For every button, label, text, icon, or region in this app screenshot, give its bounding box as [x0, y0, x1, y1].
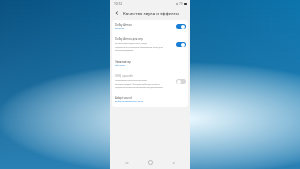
staticText: Качество звука и эффекты	[123, 10, 179, 16]
staticText: Эквалайзер	[115, 60, 131, 64]
button[interactable]: Dolby Atmos для игр	[112, 33, 188, 55]
staticText: Включен	[115, 27, 125, 30]
staticText: Dolby Atmos	[115, 23, 132, 27]
staticText: Adapt sound	[115, 96, 132, 100]
button[interactable]: Turn on	[176, 79, 186, 84]
button[interactable]: Dolby Atmos	[112, 20, 188, 33]
button[interactable]: UHQ upscaler	[112, 71, 188, 91]
button[interactable]: Adapt sound	[112, 91, 188, 107]
staticText: 79	[179, 2, 183, 6]
staticText: UHQ upscaler	[115, 74, 134, 78]
staticText: Выбор оптимального звука	[115, 100, 143, 103]
button[interactable]: Back	[167, 156, 180, 169]
staticText: 10:12	[114, 2, 123, 6]
staticText: Обычный	[115, 64, 125, 67]
button[interactable]: Turn off	[176, 24, 186, 29]
button[interactable]: Recent apps	[120, 156, 133, 169]
button[interactable]: Эквалайзер	[112, 55, 188, 71]
staticText: Повышение качества звучания музыки и вид…	[115, 79, 163, 88]
button[interactable]: Turn off	[176, 42, 186, 47]
staticText: Dolby Atmos для игр	[115, 37, 143, 41]
button[interactable]: Navigate up	[110, 8, 123, 17]
staticText: Эта функция недоступна, когда подключено…	[115, 42, 163, 51]
button[interactable]: Home	[144, 156, 157, 169]
